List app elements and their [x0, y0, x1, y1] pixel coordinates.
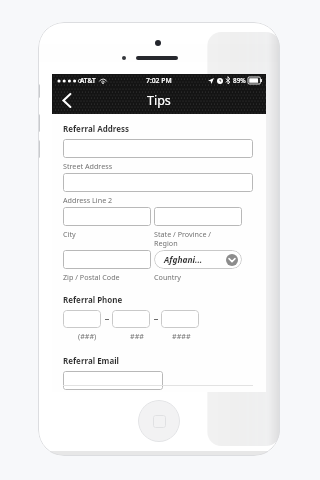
- staticText: 89%: [233, 76, 246, 85]
- staticText: Country: [154, 272, 182, 282]
- button[interactable]: [63, 173, 253, 192]
- button[interactable]: [63, 207, 151, 226]
- staticText: Street Address: [63, 161, 113, 171]
- button[interactable]: Home: [138, 400, 180, 442]
- staticText: Zip / Postal Code: [63, 272, 120, 282]
- staticText: Referral Phone: [63, 294, 123, 305]
- staticText: ####: [172, 331, 191, 341]
- other: Open country list: [226, 254, 238, 266]
- button[interactable]: [63, 371, 163, 390]
- staticText: 7:02 PM: [146, 76, 172, 85]
- staticText: Address Line 2: [63, 195, 113, 205]
- staticText: Tips: [147, 92, 171, 109]
- button[interactable]: [63, 310, 101, 328]
- staticText: Referral Email: [63, 355, 119, 366]
- button[interactable]: Afghani...: [154, 250, 242, 269]
- button[interactable]: [112, 310, 150, 328]
- staticText: State / Province / Region: [154, 229, 212, 248]
- staticText: ###: [130, 331, 144, 341]
- staticText: Referral Address: [63, 123, 130, 134]
- staticText: AT&T: [80, 76, 96, 85]
- button[interactable]: Back: [52, 87, 82, 114]
- staticText: Afghani...: [164, 254, 203, 265]
- staticText: (###): [78, 331, 97, 341]
- button[interactable]: [154, 207, 242, 226]
- button[interactable]: [161, 310, 199, 328]
- button[interactable]: [63, 139, 253, 158]
- button[interactable]: [63, 250, 151, 269]
- staticText: City: [63, 229, 76, 239]
